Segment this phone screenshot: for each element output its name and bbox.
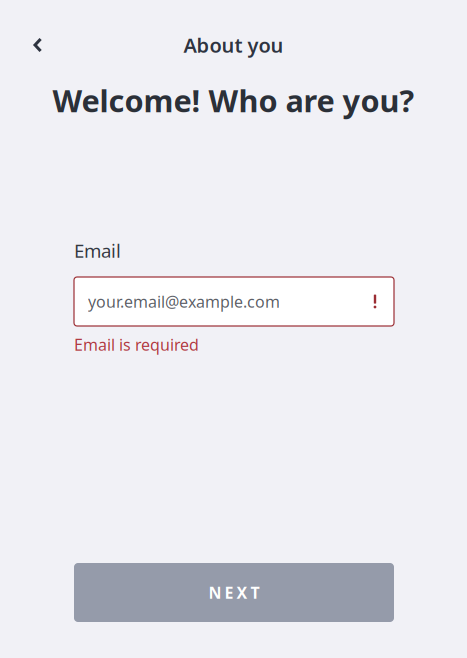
button[interactable]: Back — [18, 25, 58, 65]
staticText: Welcome! Who are you? — [52, 80, 414, 121]
button[interactable]: your.email@example.com — [74, 277, 394, 326]
button[interactable]: N E X T — [74, 563, 394, 622]
staticText: N E X T — [208, 582, 259, 603]
staticText: your.email@example.com — [88, 291, 280, 312]
staticText: Email — [74, 238, 121, 263]
staticText: About you — [183, 32, 283, 58]
staticText: Email is required — [74, 334, 199, 355]
